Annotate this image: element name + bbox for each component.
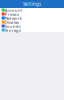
staticText: Storage (5, 27, 21, 33)
button[interactable]: Network (0, 16, 64, 20)
staticText: Settings (23, 1, 41, 7)
staticText: Account (5, 7, 23, 13)
staticText: Network (5, 15, 22, 21)
button[interactable]: Display (0, 20, 64, 24)
staticText: Display (5, 19, 19, 25)
staticText: Sounds (5, 23, 21, 29)
button[interactable]: Sounds (0, 24, 64, 28)
button[interactable]: Privacy (0, 12, 64, 16)
button[interactable]: Storage (0, 28, 64, 32)
button[interactable]: Account (0, 8, 64, 12)
staticText: Privacy (5, 11, 19, 17)
